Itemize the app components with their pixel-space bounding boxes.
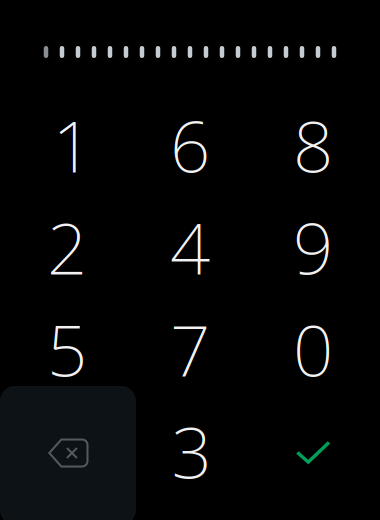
button[interactable]: Delete [5, 400, 128, 502]
button[interactable]: 9 [251, 196, 374, 298]
button[interactable]: 5 [5, 298, 128, 400]
staticText: 7 [170, 302, 210, 396]
staticText: 0 [293, 302, 333, 396]
staticText: 2 [47, 200, 87, 294]
staticText: 1 [52, 98, 92, 192]
button[interactable]: 4 [128, 196, 251, 298]
staticText: 5 [47, 302, 87, 396]
staticText: 3 [171, 404, 211, 498]
button[interactable]: 8 [251, 94, 374, 196]
button[interactable]: 2 [5, 196, 128, 298]
button[interactable]: 3 [128, 400, 251, 502]
button[interactable]: 7 [128, 298, 251, 400]
button[interactable]: Confirm [251, 400, 374, 502]
staticText: 9 [293, 200, 333, 294]
staticText: 6 [170, 98, 210, 192]
staticText: 4 [170, 200, 210, 294]
staticText: 8 [293, 98, 333, 192]
button[interactable]: 6 [128, 94, 251, 196]
button[interactable]: 1 [5, 94, 128, 196]
button[interactable]: 0 [251, 298, 374, 400]
